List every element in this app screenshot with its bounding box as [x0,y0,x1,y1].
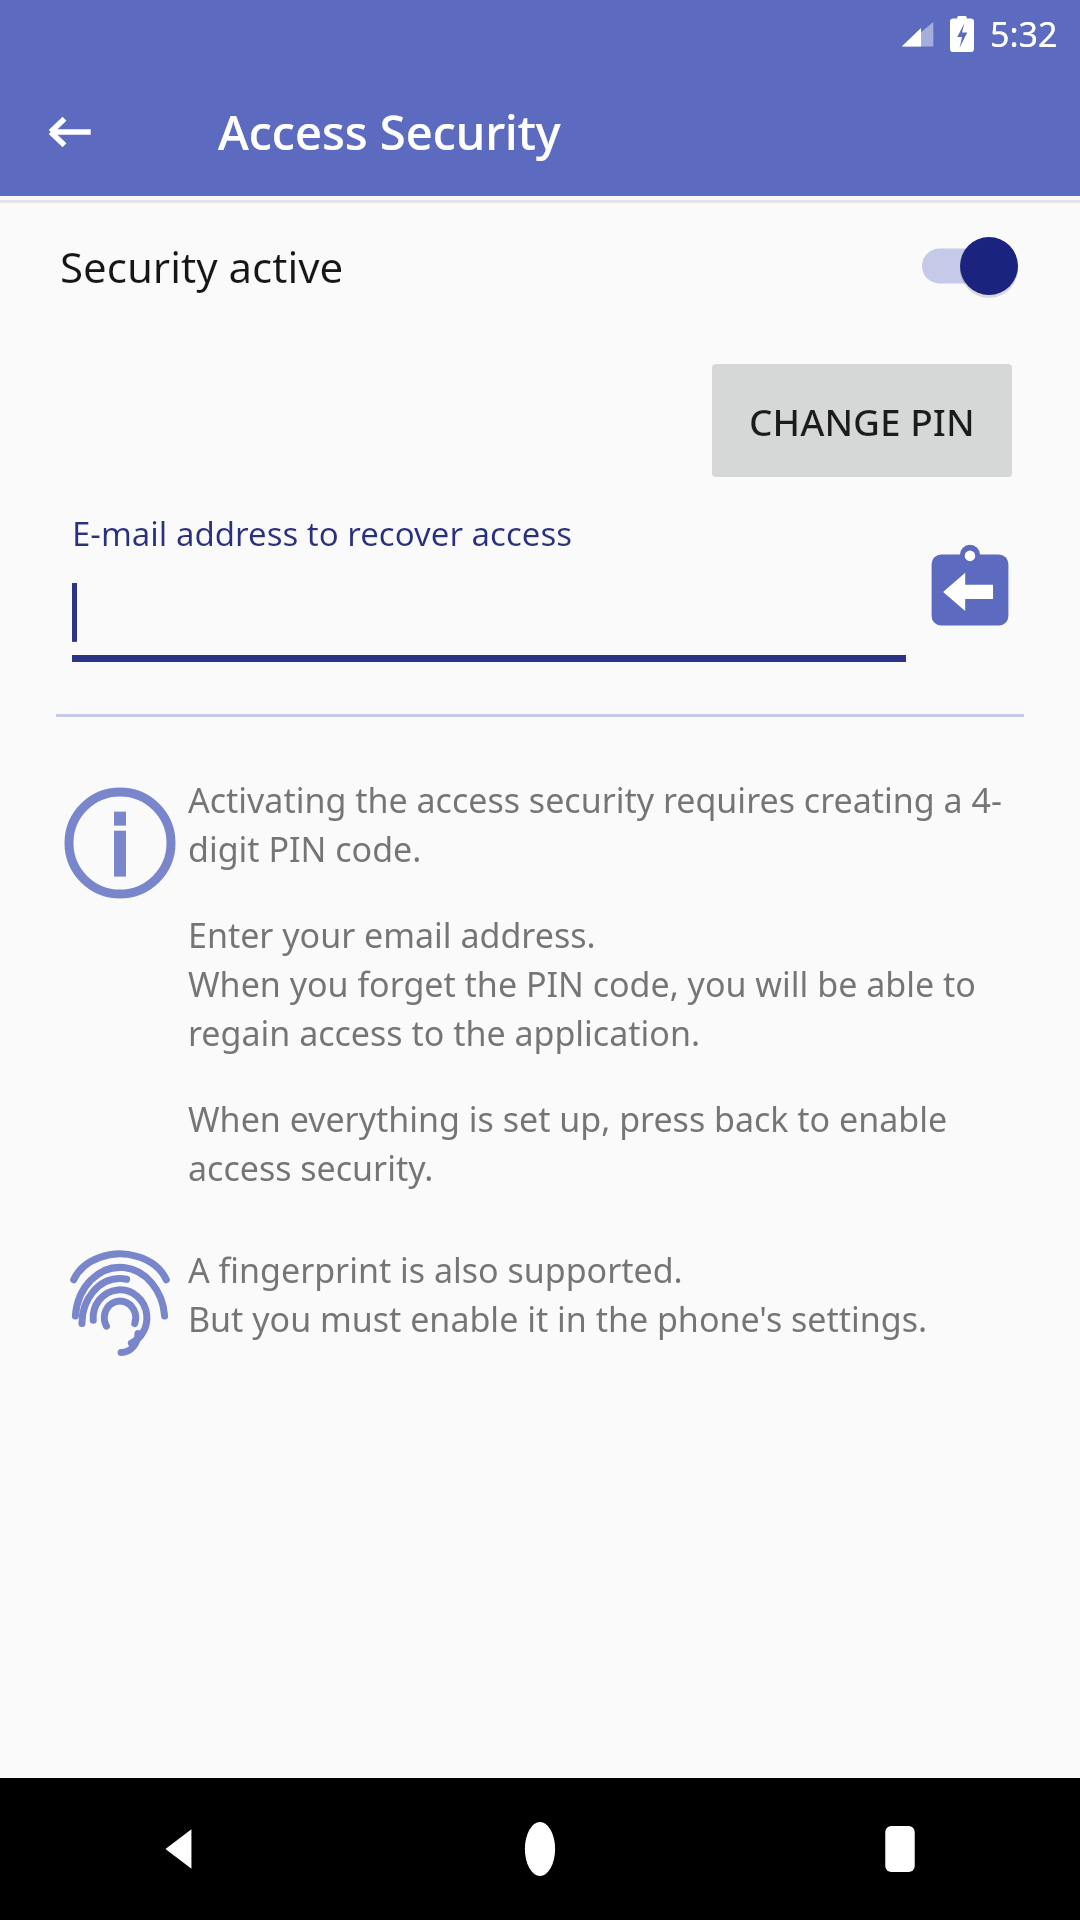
staticText: CHANGE PIN [749,396,975,446]
staticText: 5:32 [990,11,1058,57]
staticText: When everything is set up, press back to… [188,1096,1024,1191]
button[interactable]: Recent apps [720,1778,1080,1920]
staticText: Security active [60,238,344,295]
button[interactable]: Paste from clipboard [918,537,1022,641]
button[interactable]: Back [0,1778,360,1920]
staticText: A fingerprint is also supported. But you… [188,1247,928,1342]
staticText: Activating the access security requires … [188,777,1024,872]
button[interactable]: Security active [0,206,1080,326]
staticText: E-mail address to recover access [72,511,573,556]
staticText: Access Security [218,100,561,164]
button[interactable]: Home [360,1778,720,1920]
button[interactable]: CHANGE PIN [712,364,1012,477]
staticText: Enter your email address. When you forge… [188,912,1024,1056]
button[interactable]: Back [28,90,112,174]
button[interactable] [72,578,906,662]
